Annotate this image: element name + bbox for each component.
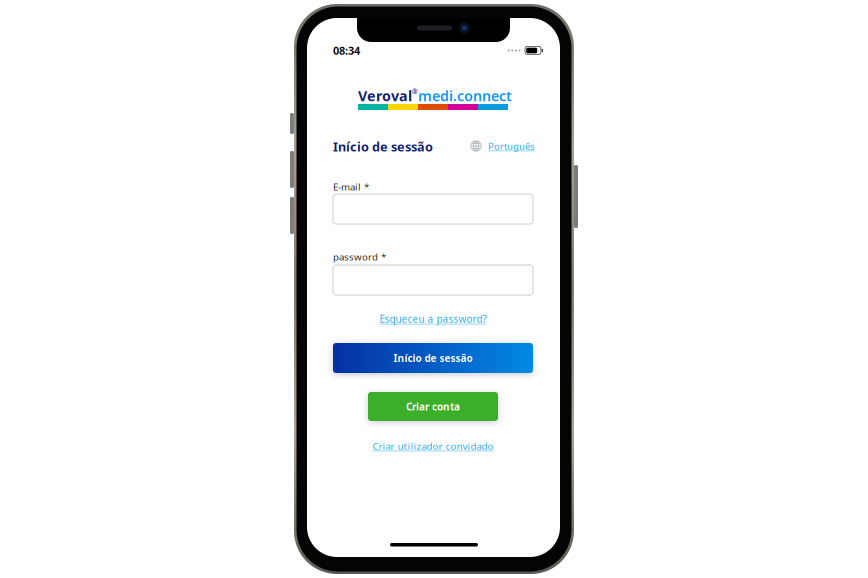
staticText: Esqueceu a password? [379, 312, 486, 326]
staticText: Criar utilizador convidado [372, 439, 493, 453]
button[interactable]: Início de sessão [333, 343, 533, 373]
staticText: ® [412, 87, 418, 96]
button[interactable]: Português [470, 139, 535, 153]
staticText: Início de sessão [393, 351, 472, 365]
button[interactable]: Criar utilizador convidado [333, 440, 533, 452]
staticText: 08:34 [333, 43, 360, 58]
staticText: Português [488, 139, 535, 153]
staticText: medi.connect [418, 86, 512, 105]
button[interactable]: Criar conta [368, 392, 498, 421]
staticText: Início de sessão [333, 138, 433, 155]
staticText: Criar conta [406, 400, 460, 413]
staticText: Veroval [358, 86, 412, 105]
button[interactable]: Esqueceu a password? [333, 313, 533, 325]
staticText: password * [333, 250, 386, 263]
staticText: E-mail * [333, 180, 369, 193]
